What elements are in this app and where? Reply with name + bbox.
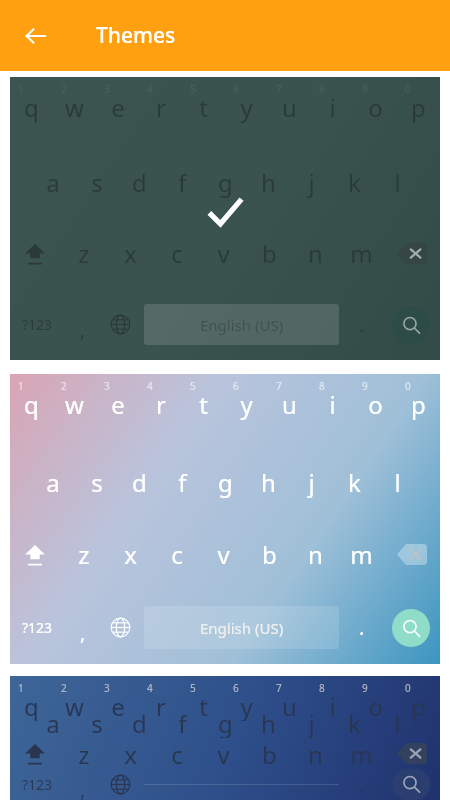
button[interactable]: , <box>65 591 100 664</box>
button[interactable]: 7 <box>268 374 311 446</box>
button[interactable]: 5 <box>182 676 225 707</box>
button[interactable]: v <box>200 518 246 591</box>
button[interactable]: 3 <box>96 374 139 446</box>
button[interactable]: c <box>154 738 200 769</box>
button[interactable]: h <box>247 707 290 738</box>
button[interactable]: h <box>247 446 290 518</box>
button[interactable]: f <box>161 446 204 518</box>
button[interactable]: Shift <box>10 738 60 769</box>
button[interactable]: a <box>31 446 75 518</box>
button[interactable]: d <box>118 707 161 738</box>
button[interactable]: English (US) <box>144 606 339 649</box>
button[interactable]: b <box>246 738 292 769</box>
button[interactable]: 0 <box>397 77 440 147</box>
button[interactable]: 5 <box>182 374 225 446</box>
button[interactable]: 1 <box>10 77 53 147</box>
button[interactable]: k <box>333 147 376 218</box>
button[interactable]: Search <box>392 306 430 344</box>
button[interactable]: 9 <box>354 77 397 147</box>
button[interactable]: Shift <box>10 518 60 591</box>
button[interactable]: Change language <box>100 591 140 664</box>
button[interactable]: m <box>338 738 384 769</box>
button[interactable]: . <box>343 591 381 664</box>
button[interactable]: z <box>60 738 107 769</box>
button[interactable]: 3 <box>96 77 139 147</box>
button[interactable]: n <box>292 518 338 591</box>
button[interactable]: b <box>246 218 292 289</box>
button[interactable]: l <box>376 707 419 738</box>
button[interactable]: 9 <box>354 374 397 446</box>
button[interactable]: Search <box>392 609 430 647</box>
button[interactable]: ?123 <box>10 769 65 800</box>
button[interactable]: English (US) <box>144 784 339 785</box>
button[interactable]: 2 <box>53 77 96 147</box>
button[interactable]: 4 <box>139 374 182 446</box>
button[interactable]: v <box>200 218 246 289</box>
button[interactable]: 1 <box>10 374 440 664</box>
button[interactable]: c <box>154 518 200 591</box>
button[interactable]: English (US) <box>144 304 339 345</box>
button[interactable]: j <box>290 707 333 738</box>
button[interactable]: 1 <box>10 676 53 707</box>
button[interactable]: 1 <box>10 77 440 360</box>
button[interactable]: j <box>290 446 333 518</box>
button[interactable]: 6 <box>225 374 268 446</box>
button[interactable]: d <box>118 147 161 218</box>
button[interactable]: Search <box>392 769 430 800</box>
button[interactable]: 4 <box>139 676 182 707</box>
button[interactable]: 1 <box>10 374 53 446</box>
button[interactable]: a <box>31 147 75 218</box>
button[interactable]: g <box>204 707 247 738</box>
button[interactable]: v <box>200 738 246 769</box>
button[interactable]: l <box>376 446 419 518</box>
button[interactable]: Backspace <box>384 218 440 289</box>
button[interactable]: a <box>31 707 75 738</box>
button[interactable]: 3 <box>96 676 139 707</box>
button[interactable]: f <box>161 707 204 738</box>
button[interactable]: s <box>75 446 118 518</box>
button[interactable]: Back <box>14 14 58 58</box>
button[interactable]: 2 <box>53 676 96 707</box>
button[interactable]: s <box>75 707 118 738</box>
button[interactable]: 6 <box>225 77 268 147</box>
button[interactable]: m <box>338 218 384 289</box>
button[interactable]: 6 <box>225 676 268 707</box>
button[interactable]: , <box>65 769 100 800</box>
button[interactable]: 0 <box>397 374 440 446</box>
button[interactable]: n <box>292 738 338 769</box>
button[interactable]: Change language <box>100 289 140 360</box>
button[interactable]: m <box>338 518 384 591</box>
button[interactable]: 2 <box>53 374 96 446</box>
button[interactable]: d <box>118 446 161 518</box>
button[interactable]: b <box>246 518 292 591</box>
button[interactable]: g <box>204 446 247 518</box>
button[interactable]: h <box>247 147 290 218</box>
button[interactable]: 9 <box>354 676 397 707</box>
button[interactable]: x <box>107 738 154 769</box>
button[interactable]: Change language <box>100 769 140 800</box>
button[interactable]: 0 <box>397 676 440 707</box>
button[interactable]: ?123 <box>10 591 65 664</box>
button[interactable]: Shift <box>10 218 60 289</box>
button[interactable]: 1 <box>10 676 440 800</box>
button[interactable]: k <box>333 707 376 738</box>
button[interactable]: 7 <box>268 676 311 707</box>
button[interactable]: 8 <box>311 374 354 446</box>
button[interactable]: Backspace <box>384 518 440 591</box>
button[interactable]: 8 <box>311 676 354 707</box>
button[interactable]: 7 <box>268 77 311 147</box>
